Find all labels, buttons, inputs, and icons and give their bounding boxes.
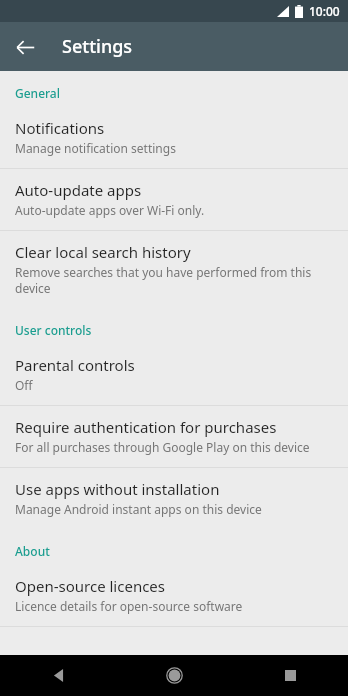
staticText: Require authentication for purchases [15,417,277,437]
button[interactable]: Back [0,655,116,696]
staticText: 10:00 [309,3,340,19]
staticText: Auto-update apps over Wi-Fi only. [15,202,205,218]
staticText: Manage Android instant apps on this devi… [15,501,262,517]
staticText: Settings [62,34,133,59]
staticText: About [15,543,50,559]
button[interactable]: Home [116,655,232,696]
staticText: Off [15,377,33,393]
staticText: Clear local search history [15,242,191,262]
button[interactable]: Clear local search history [0,231,348,308]
button[interactable]: Parental controls [0,344,348,405]
button[interactable]: Notifications [0,107,348,168]
staticText: For all purchases through Google Play on… [15,439,310,455]
staticText: General [15,85,60,101]
staticText: Licence details for open-source software [15,598,243,614]
button[interactable]: Back [8,30,42,64]
button[interactable]: Use apps without installation [0,468,348,529]
button[interactable]: Auto-update apps [0,169,348,230]
staticText: Remove searches that you have performed … [15,264,333,296]
staticText: Open-source licences [15,576,166,596]
staticText: Notifications [15,118,105,138]
button[interactable]: Require authentication for purchases [0,406,348,467]
staticText: User controls [15,322,92,338]
staticText: Parental controls [15,355,135,375]
button[interactable]: Open-source licences [0,565,348,626]
staticText: Auto-update apps [15,180,142,200]
staticText: Manage notification settings [15,140,176,156]
button[interactable]: Recent apps [232,655,348,696]
staticText: Use apps without installation [15,479,220,499]
